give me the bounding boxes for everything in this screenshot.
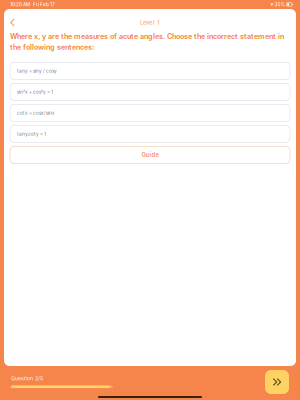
button[interactable]: Back	[4, 12, 23, 32]
staticText: Guide	[141, 151, 158, 158]
staticText: Where x, y are the measures of acute ang…	[10, 32, 284, 51]
button[interactable]: tany.coty = 1	[10, 125, 290, 142]
staticText: 10:20 AM Fri Feb 17	[10, 2, 55, 7]
staticText: tany.coty = 1	[17, 131, 46, 137]
button[interactable]: Guide	[10, 146, 290, 163]
button[interactable]: Next question	[265, 370, 289, 394]
button[interactable]: sin²x + cos²y = 1	[10, 83, 290, 100]
staticText: cotx = cosx/sinx	[17, 110, 55, 116]
staticText: Question 2/5	[11, 375, 43, 381]
staticText: Level 1	[140, 19, 160, 26]
staticText: tany = siny / cosy	[17, 68, 57, 74]
button[interactable]: tany = siny / cosy	[10, 62, 290, 79]
button[interactable]: cotx = cosx/sinx	[10, 104, 290, 121]
staticText: sin²x + cos²y = 1	[17, 89, 53, 95]
staticText: 35%	[273, 2, 285, 7]
